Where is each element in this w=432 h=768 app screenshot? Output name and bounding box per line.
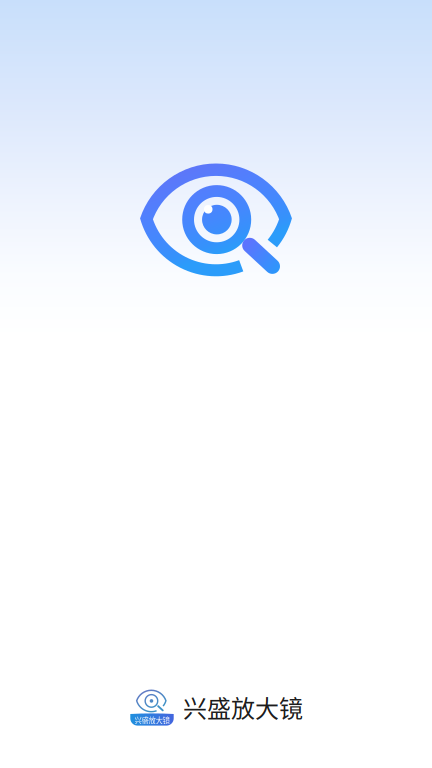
staticText: 兴盛放大镜 [183,690,303,724]
staticText: 兴盛放大镜 [134,715,169,726]
